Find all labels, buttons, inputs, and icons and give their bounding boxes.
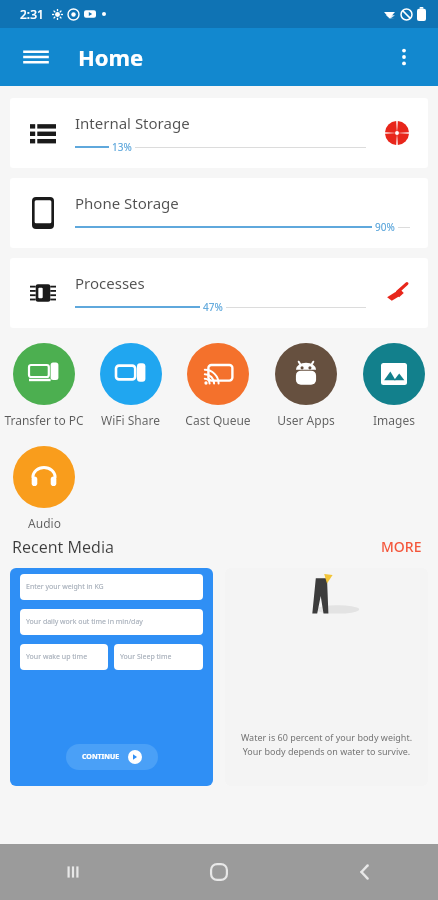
staticText: Images: [373, 412, 415, 428]
staticText: Your Sleep time: [120, 652, 172, 662]
staticText: 47%: [203, 300, 223, 314]
button[interactable]: Cast Queue: [174, 339, 262, 428]
staticText: Internal Storage: [75, 113, 190, 133]
button[interactable]: User Apps: [262, 339, 350, 428]
button[interactable]: Recent apps: [0, 844, 146, 900]
staticText: Cast Queue: [185, 412, 251, 428]
button[interactable]: Phone Storage: [10, 178, 428, 248]
staticText: Water is 60 percent of your body weight.…: [237, 731, 416, 758]
staticText: Audio: [28, 515, 61, 531]
button[interactable]: Back: [292, 844, 438, 900]
staticText: Processes: [75, 273, 145, 293]
staticText: Your daily work out time in min/day: [26, 617, 143, 627]
staticText: User Apps: [277, 412, 335, 428]
button[interactable]: Processes: [10, 258, 428, 328]
button[interactable]: Recent screenshot: [10, 568, 213, 786]
staticText: Recent Media: [12, 536, 114, 558]
staticText: 90%: [375, 220, 395, 234]
button[interactable]: WiFi Share: [87, 339, 174, 428]
staticText: Transfer to PC: [4, 412, 84, 428]
button[interactable]: Transfer to PC: [0, 339, 87, 428]
button[interactable]: Open navigation menu: [16, 37, 56, 77]
button[interactable]: Internal Storage: [10, 98, 428, 168]
button[interactable]: Recent image: [225, 568, 428, 786]
staticText: Phone Storage: [75, 193, 179, 213]
button[interactable]: Home: [146, 844, 292, 900]
staticText: Home: [78, 42, 144, 72]
staticText: WiFi Share: [101, 412, 160, 428]
button[interactable]: Clean processes: [380, 276, 414, 310]
staticText: CONTINUE: [82, 752, 120, 762]
staticText: 2:31: [20, 6, 44, 22]
staticText: MORE: [381, 537, 422, 556]
staticText: Enter your weight in KG: [26, 582, 104, 592]
button[interactable]: Images: [350, 339, 438, 428]
button[interactable]: More options: [384, 37, 424, 77]
button[interactable]: Audio: [0, 442, 88, 531]
button[interactable]: MORE: [377, 533, 426, 560]
staticText: 13%: [112, 140, 132, 154]
button[interactable]: Storage analysis: [380, 116, 414, 150]
staticText: Your wake up time: [26, 652, 88, 662]
